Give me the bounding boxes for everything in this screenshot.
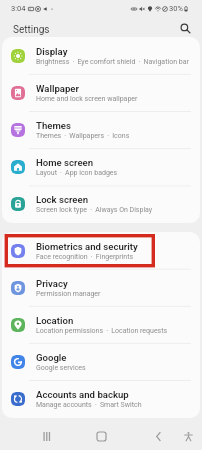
button[interactable]: Biometrics and security bbox=[2, 232, 200, 269]
button[interactable]: Accessibility bbox=[177, 425, 199, 447]
button[interactable]: Search bbox=[177, 20, 194, 37]
button[interactable]: Lock screen bbox=[2, 185, 200, 222]
staticText: Home and lock screen wallpaper bbox=[36, 95, 138, 103]
staticText: Screen lock type · Always On Display bbox=[36, 206, 153, 214]
staticText: Themes bbox=[36, 120, 71, 131]
button[interactable]: Home screen bbox=[2, 148, 200, 185]
staticText: Location bbox=[36, 315, 74, 326]
staticText: Permission manager bbox=[36, 290, 101, 298]
staticText: Themes · Wallpapers · Icons bbox=[36, 132, 130, 140]
staticText: Display bbox=[36, 46, 68, 57]
staticText: Privacy bbox=[36, 278, 68, 289]
button[interactable]: Home bbox=[90, 425, 112, 447]
button[interactable]: Display bbox=[2, 37, 200, 74]
staticText: Settings bbox=[13, 24, 50, 36]
button[interactable]: Privacy bbox=[2, 269, 200, 306]
button[interactable]: Location bbox=[2, 306, 200, 343]
staticText: Layout · App icon badges bbox=[36, 169, 118, 177]
staticText: Accounts and backup bbox=[36, 389, 129, 400]
staticText: 30% bbox=[169, 4, 183, 13]
staticText: Home screen bbox=[36, 157, 94, 168]
staticText: Biometrics and security bbox=[36, 241, 138, 252]
staticText: Location permissions · Location requests bbox=[36, 327, 168, 335]
staticText: 3:04 bbox=[11, 4, 26, 13]
staticText: Manage accounts · Smart Switch bbox=[36, 401, 142, 409]
staticText: Google bbox=[36, 352, 67, 363]
staticText: Google services bbox=[36, 364, 86, 372]
button[interactable]: Google bbox=[2, 343, 200, 380]
button[interactable]: Back bbox=[147, 425, 169, 447]
staticText: Face recognition · Fingerprints bbox=[36, 253, 134, 261]
button[interactable]: Wallpaper bbox=[2, 74, 200, 111]
button[interactable]: Themes bbox=[2, 111, 200, 148]
staticText: Lock screen bbox=[36, 194, 89, 205]
button[interactable]: Accounts and backup bbox=[2, 380, 200, 417]
staticText: Wallpaper bbox=[36, 83, 79, 94]
button[interactable]: Recents bbox=[35, 425, 57, 447]
staticText: Brightness · Eye comfort shield · Naviga… bbox=[36, 58, 189, 66]
